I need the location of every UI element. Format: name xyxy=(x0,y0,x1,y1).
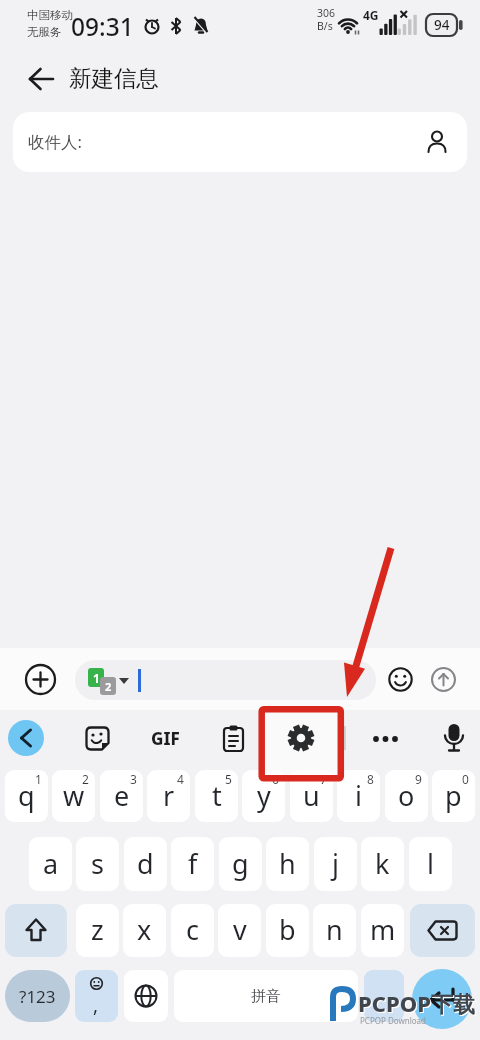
staticText: 7 xyxy=(320,771,327,787)
button[interactable]: b xyxy=(266,904,309,957)
button[interactable]: o xyxy=(385,770,428,822)
staticText: 8 xyxy=(367,771,374,787)
staticText: 4G xyxy=(363,7,379,23)
button[interactable]: n xyxy=(313,904,356,957)
staticText: 9 xyxy=(415,771,422,787)
staticText: f xyxy=(188,845,198,882)
button[interactable]: 拼音 xyxy=(174,970,358,1022)
staticText: PCPOP下载 xyxy=(358,988,475,1018)
staticText: p xyxy=(445,777,462,814)
button[interactable]: c xyxy=(171,904,214,957)
staticText: s xyxy=(91,845,104,882)
staticText: 4 xyxy=(177,771,184,787)
staticText: j xyxy=(332,845,339,882)
button[interactable] xyxy=(25,664,56,695)
button[interactable] xyxy=(441,722,467,754)
button[interactable]: f xyxy=(171,837,214,891)
button[interactable] xyxy=(5,904,67,957)
button[interactable]: v xyxy=(218,904,261,957)
staticText: PCPOP下载 xyxy=(359,989,476,1019)
button[interactable]: g xyxy=(219,837,262,891)
button[interactable] xyxy=(285,722,317,754)
staticText: t xyxy=(212,777,222,814)
staticText: d xyxy=(137,845,154,882)
button[interactable] xyxy=(364,970,404,1022)
button[interactable]: e xyxy=(100,770,143,822)
button[interactable] xyxy=(431,667,456,692)
staticText: r xyxy=(163,777,175,814)
button[interactable]: l xyxy=(409,837,452,891)
staticText: v xyxy=(233,911,247,948)
staticText: 2 xyxy=(105,679,112,694)
staticText: q xyxy=(18,777,35,814)
button[interactable] xyxy=(425,130,449,154)
button[interactable] xyxy=(371,734,401,744)
button[interactable] xyxy=(410,904,475,957)
staticText: B/s xyxy=(317,19,333,33)
staticText: PCPOP Download xyxy=(360,1015,426,1026)
button[interactable]: j xyxy=(314,837,357,891)
button[interactable]: z xyxy=(76,904,119,957)
staticText: 无服务 xyxy=(27,25,62,39)
button[interactable]: t xyxy=(195,770,238,822)
staticText: 6 xyxy=(272,771,279,787)
staticText: 1 xyxy=(93,670,100,686)
staticText: 拼音 xyxy=(251,987,281,1006)
staticText: l xyxy=(427,845,434,882)
staticText: i xyxy=(355,777,362,814)
staticText: b xyxy=(279,911,296,948)
button[interactable]: p xyxy=(432,770,475,822)
button[interactable]: d xyxy=(124,837,167,891)
staticText: n xyxy=(326,911,343,948)
button[interactable]: ?123 xyxy=(5,970,70,1022)
button[interactable]: s xyxy=(76,837,119,891)
button[interactable]: i xyxy=(337,770,380,822)
button[interactable]: h xyxy=(266,837,309,891)
button[interactable]: a xyxy=(29,837,72,891)
staticText: h xyxy=(279,845,296,882)
button[interactable]: 收件人: xyxy=(13,112,467,172)
button[interactable]: 1 xyxy=(75,660,376,700)
staticText: w xyxy=(63,777,85,814)
button[interactable] xyxy=(84,725,111,752)
button[interactable] xyxy=(124,970,168,1022)
staticText: a xyxy=(43,845,59,882)
staticText: k xyxy=(375,845,390,882)
staticText: 5 xyxy=(225,771,232,787)
staticText: c xyxy=(186,911,199,948)
staticText: 306 xyxy=(317,6,336,20)
button[interactable] xyxy=(28,65,56,93)
staticText: y xyxy=(257,777,271,814)
staticText: ?123 xyxy=(19,985,56,1008)
staticText: 0 xyxy=(462,771,469,787)
button[interactable]: , xyxy=(75,970,118,1022)
button[interactable]: m xyxy=(361,904,404,957)
button[interactable] xyxy=(8,720,44,756)
staticText: 09:31 xyxy=(71,10,134,43)
staticText: g xyxy=(232,845,249,882)
staticText: x xyxy=(137,911,152,948)
staticText: , xyxy=(93,992,99,1018)
staticText: 收件人: xyxy=(28,130,82,153)
staticText: u xyxy=(303,777,320,814)
button[interactable]: k xyxy=(361,837,404,891)
button[interactable] xyxy=(412,969,472,1029)
button[interactable]: w xyxy=(52,770,95,822)
button[interactable]: y xyxy=(242,770,285,822)
button[interactable]: GIF xyxy=(144,722,186,754)
staticText: 94 xyxy=(434,16,450,34)
staticText: 新建信息 xyxy=(69,64,159,92)
staticText: 3 xyxy=(130,771,137,787)
button[interactable]: q xyxy=(5,770,48,822)
staticText: 中国移动 xyxy=(27,8,73,22)
button[interactable]: u xyxy=(290,770,333,822)
button[interactable]: r xyxy=(147,770,190,822)
staticText: 2 xyxy=(82,771,89,787)
staticText: o xyxy=(398,777,415,814)
button[interactable] xyxy=(388,667,413,692)
staticText: 1 xyxy=(35,771,42,787)
button[interactable] xyxy=(221,724,246,753)
button[interactable]: x xyxy=(123,904,166,957)
staticText: m xyxy=(370,911,396,948)
staticText: z xyxy=(91,911,104,948)
